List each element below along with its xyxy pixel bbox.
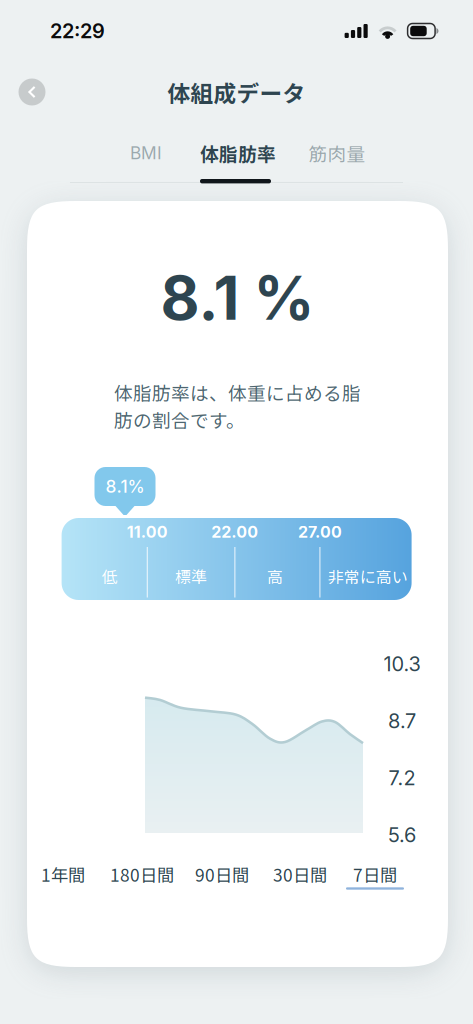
staticText: 体組成データ bbox=[167, 76, 305, 108]
staticText: 8.1 % bbox=[160, 262, 314, 334]
staticText: 10.3 bbox=[383, 652, 420, 676]
staticText: 筋肉量 bbox=[308, 139, 365, 166]
button[interactable]: 筋肉量 bbox=[299, 133, 375, 173]
staticText: 高 bbox=[267, 564, 283, 588]
staticText: 22:29 bbox=[50, 19, 105, 43]
staticText: 22.00 bbox=[211, 522, 258, 542]
button[interactable]: 1年間 bbox=[34, 861, 92, 894]
staticText: 90日間 bbox=[195, 862, 249, 887]
button[interactable]: 7日間 bbox=[346, 861, 404, 894]
staticText: 7日間 bbox=[353, 862, 397, 887]
button[interactable]: 30日間 bbox=[266, 861, 334, 894]
staticText: 体脂肪率は、体重に占める脂 肪の割合です。 bbox=[114, 379, 361, 433]
button[interactable]: 体脂肪率 bbox=[193, 133, 283, 173]
staticText: 8.1% bbox=[105, 476, 144, 497]
staticText: BMI bbox=[130, 142, 162, 163]
staticText: 非常に高い bbox=[328, 564, 408, 588]
staticText: 低 bbox=[102, 564, 118, 588]
staticText: 1年間 bbox=[41, 862, 85, 887]
button[interactable]: BMI bbox=[109, 133, 183, 173]
staticText: 7.2 bbox=[388, 766, 415, 790]
staticText: 体脂肪率 bbox=[200, 139, 276, 166]
staticText: 標準 bbox=[175, 564, 207, 588]
staticText: 11.00 bbox=[127, 522, 168, 542]
staticText: 180日間 bbox=[110, 862, 174, 887]
button[interactable]: 180日間 bbox=[104, 861, 180, 894]
button[interactable]: Back bbox=[14, 74, 50, 110]
staticText: 30日間 bbox=[273, 862, 327, 887]
staticText: 8.7 bbox=[388, 709, 416, 733]
button[interactable]: 90日間 bbox=[188, 861, 256, 894]
staticText: 5.6 bbox=[388, 823, 416, 847]
staticText: 27.00 bbox=[298, 522, 342, 542]
